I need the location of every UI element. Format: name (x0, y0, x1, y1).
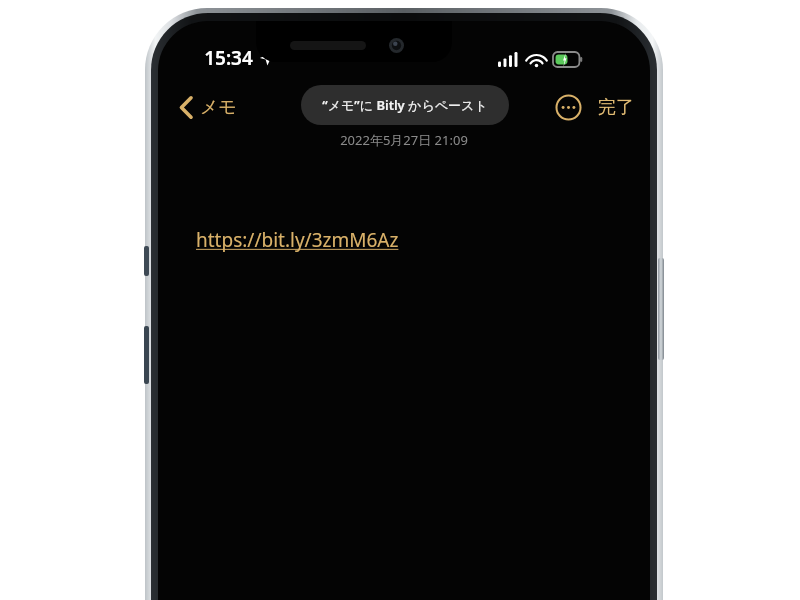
staticText: 完了 (598, 96, 634, 119)
button[interactable]: “メモ”に Bitly からペースト (301, 85, 509, 125)
staticText: 2022年5月27日 21:09 (340, 131, 468, 149)
button[interactable]: メモ (172, 90, 245, 125)
staticText: https://bit.ly/3zmM6Az (196, 227, 399, 253)
button[interactable]: 完了 (594, 90, 638, 125)
button[interactable]: https://bit.ly/3zmM6Az (196, 227, 399, 253)
staticText: 15:34 (204, 45, 253, 71)
staticText: “メモ”に Bitly からペースト (322, 96, 488, 114)
staticText: メモ (200, 96, 237, 119)
button[interactable]: More options (551, 90, 586, 125)
